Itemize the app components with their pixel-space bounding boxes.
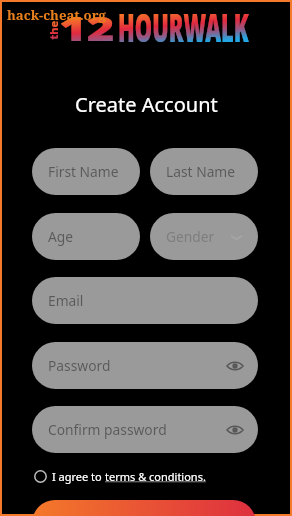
staticText: Password [48,356,111,375]
button[interactable]: Confirm password [32,406,258,453]
button[interactable]: Sign Up [32,500,256,516]
staticText: hack-cheat.org [7,6,106,24]
staticText: Sign Up [117,513,172,516]
button[interactable]: Show password [226,357,244,375]
staticText: Last Name [166,162,236,181]
button[interactable]: Email [32,277,258,324]
button[interactable]: Show password [226,421,244,439]
button[interactable]: terms & conditions. [105,469,206,484]
button[interactable]: Gender [150,213,258,260]
staticText: Age [48,227,74,246]
staticText: Create Account [75,91,218,118]
staticText: Email [48,291,84,310]
staticText: Gender [166,227,215,246]
staticText: I agree to [52,469,105,484]
staticText: First Name [48,162,119,181]
button[interactable]: First Name [32,148,140,195]
button[interactable]: Password [32,342,258,389]
button[interactable]: Age [32,213,140,260]
staticText: Confirm password [48,420,167,439]
button[interactable]: Last Name [150,148,258,195]
button[interactable]: Agree to terms [31,467,49,485]
